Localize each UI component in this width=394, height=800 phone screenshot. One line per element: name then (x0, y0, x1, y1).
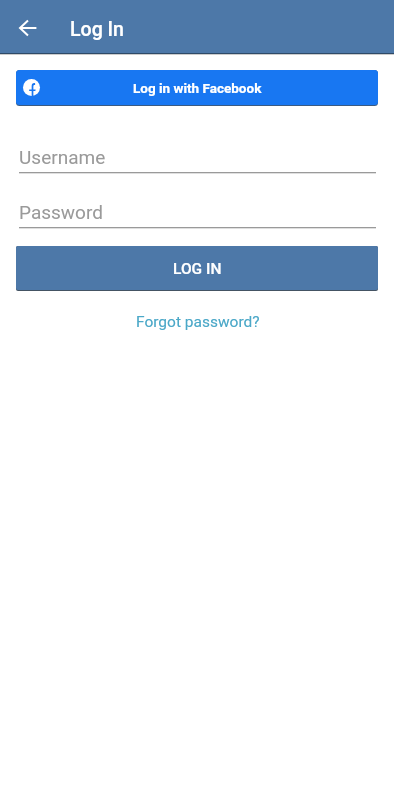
staticText: Username (19, 146, 106, 168)
button[interactable]: Back (6, 6, 50, 50)
staticText: LOG IN (173, 260, 222, 278)
button[interactable] (16, 142, 378, 178)
staticText: Log in with Facebook (133, 80, 262, 96)
staticText: Forgot password? (136, 313, 260, 331)
staticText: Password (19, 201, 103, 223)
button[interactable]: LOG IN (16, 246, 378, 290)
button[interactable]: Forgot password? (130, 310, 266, 334)
button[interactable] (16, 197, 378, 233)
button[interactable]: Log in with Facebook (16, 70, 378, 105)
staticText: Log In (70, 18, 124, 41)
